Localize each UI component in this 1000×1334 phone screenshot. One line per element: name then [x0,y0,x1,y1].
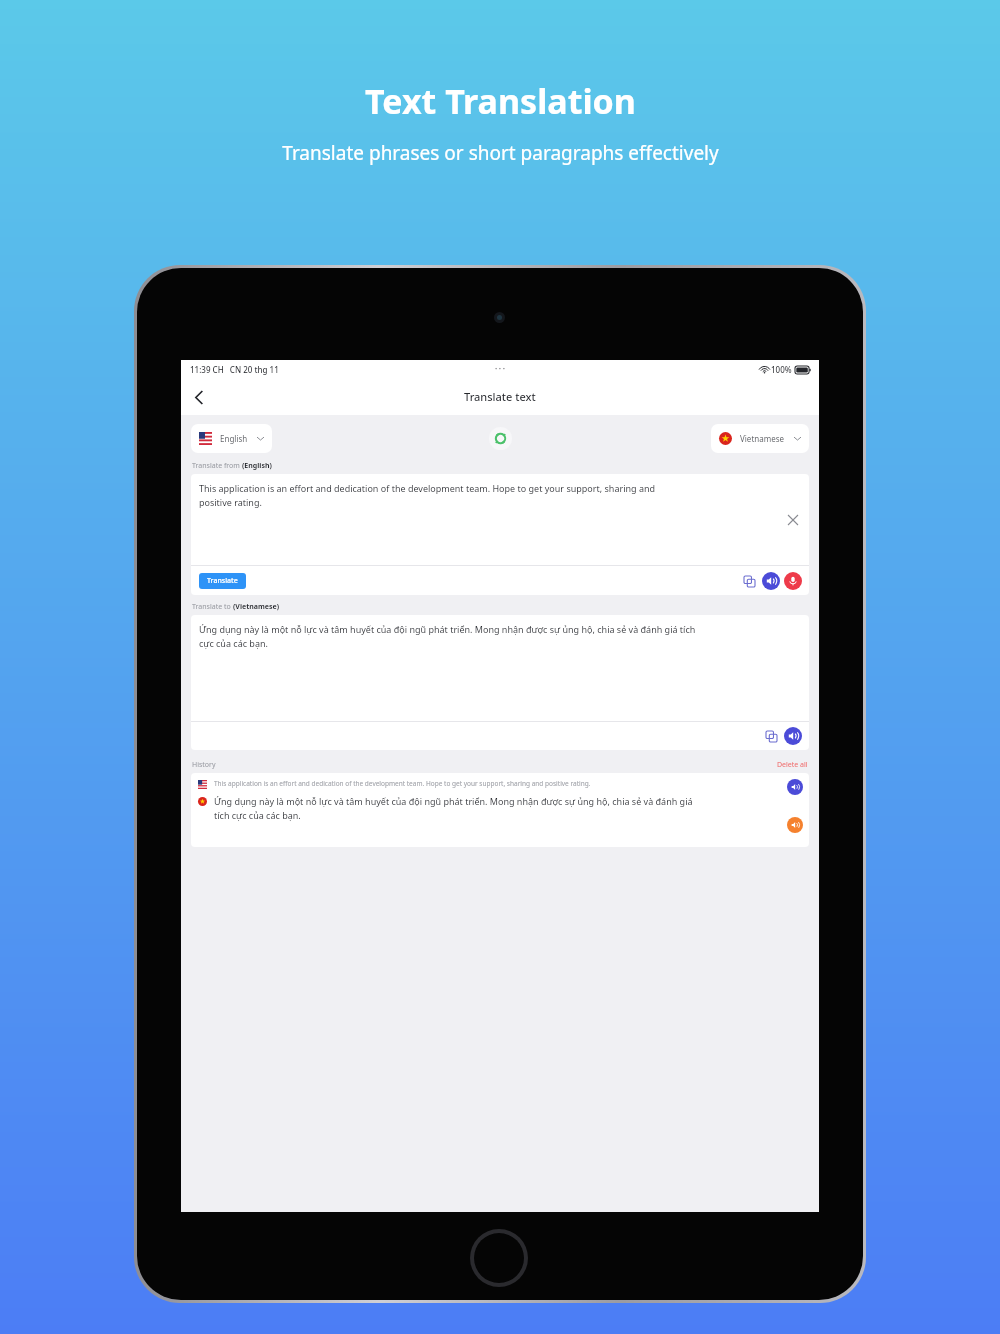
button[interactable]: Speak [762,572,780,590]
staticText: 11:39 CH CN 20 thg 11 [190,364,279,375]
staticText: History [192,760,216,770]
button[interactable]: Swap languages [489,427,512,450]
staticText: Translate [207,576,238,586]
staticText: Translate from [192,461,242,471]
staticText: Text Translation [365,78,636,124]
button[interactable]: English [191,424,272,453]
staticText: (English) [242,461,272,471]
button[interactable]: Play translation [787,817,803,833]
staticText: Delete all [777,760,808,770]
button[interactable]: Back [185,383,213,411]
staticText: English [220,433,248,444]
staticText: Translate phrases or short paragraphs ef… [282,140,719,166]
staticText: Ứng dụng này là một nỗ lực và tâm huyết … [214,795,693,822]
button[interactable]: Translate [199,573,246,589]
button[interactable]: This application is an effort and dedica… [191,773,809,847]
button[interactable]: Vietnamese [711,424,809,453]
button[interactable]: Play source [787,779,803,795]
staticText: This application is an effort and dedica… [214,779,591,788]
staticText: 100% [771,364,792,375]
staticText: (Vietnamese) [233,602,280,612]
staticText: This application is an effort and dedica… [199,482,656,509]
button[interactable]: Copy [740,572,758,590]
staticText: • • • [495,365,505,373]
button[interactable]: Clear text [783,510,803,530]
staticText: Translate to [192,602,233,612]
button[interactable]: Delete all [777,760,808,770]
button[interactable]: Speak [784,727,802,745]
staticText: Vietnamese [740,433,785,444]
button[interactable]: Speak [784,572,802,590]
staticText: Ứng dụng này là một nỗ lực và tâm huyết … [199,623,696,650]
staticText: Translate text [464,389,536,404]
button[interactable]: Copy translation [762,727,780,745]
